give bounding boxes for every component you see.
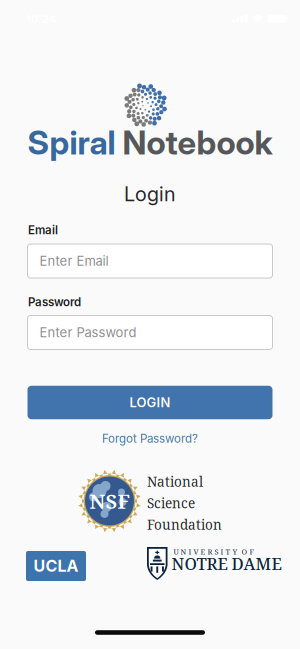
- staticText: Enter Password: [39, 325, 136, 340]
- staticText: Email: [28, 223, 58, 237]
- staticText: NSF: [89, 487, 129, 515]
- staticText: UCLA: [33, 556, 78, 576]
- staticText: Login: [124, 182, 176, 206]
- staticText: Forgot Password?: [102, 431, 198, 445]
- button[interactable]: Enter Email: [27, 244, 272, 278]
- button[interactable]: Forgot Password?: [102, 431, 198, 445]
- staticText: LOGIN: [129, 395, 170, 410]
- button[interactable]: LOGIN: [27, 386, 272, 419]
- staticText: Foundation: [147, 515, 222, 534]
- staticText: Enter Email: [39, 253, 108, 269]
- staticText: Password: [28, 295, 81, 309]
- staticText: Science: [147, 494, 195, 512]
- staticText: NOTRE DAME: [171, 552, 281, 575]
- staticText: U N I V E R S I T Y O F: [173, 546, 253, 557]
- staticText: National: [147, 472, 203, 491]
- button[interactable]: Enter Password: [27, 315, 272, 349]
- staticText: Notebook: [122, 122, 272, 162]
- staticText: Spiral: [27, 122, 115, 162]
